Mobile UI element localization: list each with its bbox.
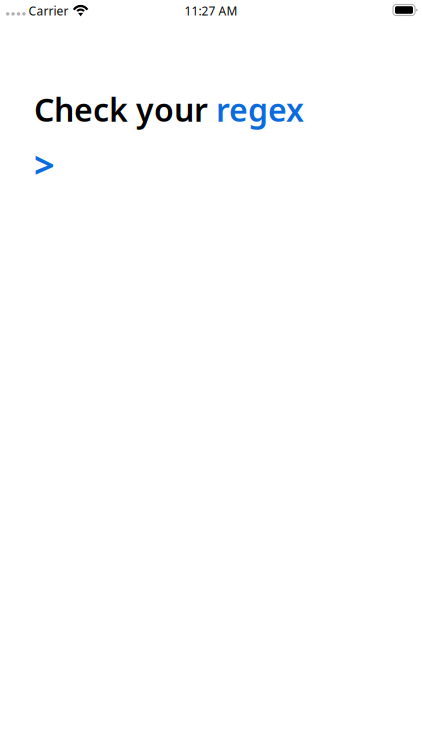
- staticText: Carrier: [28, 3, 68, 19]
- staticText: >: [34, 140, 55, 188]
- staticText: 11:27 AM: [184, 3, 237, 19]
- button[interactable]: Continue: [34, 140, 55, 188]
- staticText: Check your: [34, 88, 216, 130]
- staticText: regex: [216, 88, 304, 130]
